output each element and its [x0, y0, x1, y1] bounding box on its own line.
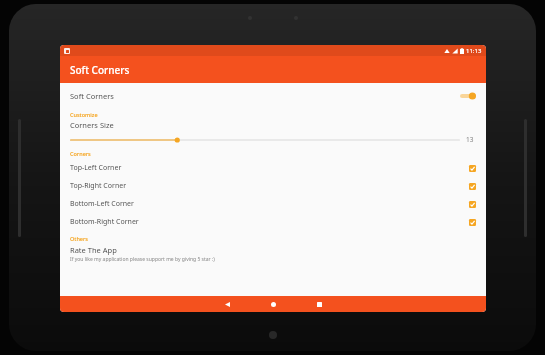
staticText: Top-Right Corner: [70, 181, 127, 191]
button[interactable]: Corners size slider: [70, 136, 460, 144]
staticText: Rate The App: [70, 245, 117, 255]
staticText: Others: [70, 235, 89, 242]
button[interactable]: Rate The App: [60, 244, 486, 264]
other: Checked: [469, 165, 476, 172]
button[interactable]: Bottom-Right Corner: [60, 213, 486, 231]
staticText: 13: [466, 135, 476, 144]
other: Checked: [469, 201, 476, 208]
staticText: Corners: [70, 150, 91, 157]
staticText: Bottom-Right Corner: [70, 217, 139, 227]
button[interactable]: Corners Size: [60, 120, 486, 144]
button[interactable]: Soft Corners: [60, 85, 486, 107]
staticText: Corners Size: [70, 120, 114, 130]
staticText: 11:13: [466, 47, 482, 55]
staticText: If you like my application please suppor…: [70, 256, 215, 263]
button[interactable]: Soft Corners toggle: [460, 91, 476, 101]
button[interactable]: Home: [258, 296, 288, 312]
staticText: Bottom-Left Corner: [70, 199, 134, 209]
button[interactable]: Back: [212, 296, 242, 312]
button[interactable]: Bottom-Left Corner: [60, 195, 486, 213]
other: Checked: [469, 219, 476, 226]
button[interactable]: Top-Left Corner: [60, 159, 486, 177]
staticText: Soft Corners: [70, 91, 114, 101]
other: Checked: [469, 183, 476, 190]
button[interactable]: Top-Right Corner: [60, 177, 486, 195]
staticText: Soft Corners: [70, 63, 130, 77]
staticText: Customize: [70, 111, 98, 118]
staticText: Top-Left Corner: [70, 163, 122, 173]
button[interactable]: Recent apps: [304, 296, 334, 312]
